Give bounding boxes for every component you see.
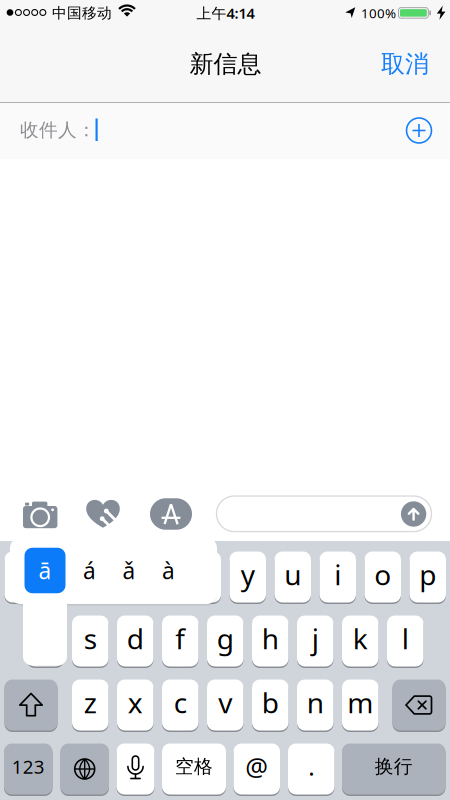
staticText: w xyxy=(57,556,79,593)
button[interactable]: t xyxy=(184,551,221,602)
staticText: 取消 xyxy=(381,49,429,79)
staticText: s xyxy=(84,620,97,657)
button[interactable]: i xyxy=(319,551,356,602)
button[interactable]: l xyxy=(387,615,423,666)
staticText: 上午4:14 xyxy=(196,3,254,23)
button[interactable]: x xyxy=(117,679,153,730)
button[interactable]: á xyxy=(83,555,96,585)
button[interactable]: 123 xyxy=(4,743,52,794)
button[interactable]: s xyxy=(72,615,108,666)
button[interactable]: 换行 xyxy=(342,743,445,794)
button[interactable]: k xyxy=(342,615,378,666)
button[interactable]: 数字触控 xyxy=(85,497,121,530)
staticText: c xyxy=(174,684,187,721)
staticText: 空格 xyxy=(175,755,213,778)
button[interactable]: 信息输入框 xyxy=(216,496,431,531)
staticText: g xyxy=(217,620,234,657)
staticText: n xyxy=(307,684,324,721)
button[interactable]: b xyxy=(252,679,288,730)
staticText: b xyxy=(262,684,279,721)
staticText: 新信息 xyxy=(189,49,261,79)
staticText: u xyxy=(284,556,301,593)
staticText: x xyxy=(128,684,143,721)
button[interactable]: j xyxy=(297,615,333,666)
staticText: r xyxy=(152,556,164,593)
staticText: v xyxy=(218,684,232,721)
button[interactable]: p xyxy=(409,551,446,602)
button[interactable]: n xyxy=(297,679,333,730)
staticText: 换行 xyxy=(375,755,413,778)
button[interactable]: 发送 xyxy=(401,501,426,527)
staticText: @ xyxy=(245,750,268,783)
button[interactable]: c xyxy=(162,679,198,730)
staticText: 123 xyxy=(12,754,45,779)
button[interactable]: . xyxy=(288,743,334,794)
staticText: h xyxy=(262,620,279,657)
button[interactable]: 应用商店 xyxy=(148,497,194,531)
staticText: 100% xyxy=(361,4,396,22)
button[interactable]: 相机 xyxy=(20,501,60,531)
staticText: j xyxy=(312,620,319,657)
button[interactable]: ǎ xyxy=(122,555,135,585)
staticText: z xyxy=(84,684,97,721)
staticText: l xyxy=(402,620,409,657)
button[interactable]: m xyxy=(342,679,378,730)
staticText: i xyxy=(334,556,341,593)
button[interactable]: 取消 xyxy=(370,44,440,84)
button[interactable]: g xyxy=(207,615,243,666)
button[interactable]: à xyxy=(162,555,175,585)
button[interactable]: f xyxy=(162,615,198,666)
staticText: à xyxy=(162,555,175,585)
button[interactable]: 下一个键盘 xyxy=(60,743,109,794)
button[interactable]: h xyxy=(252,615,288,666)
button[interactable]: 添加联系人 xyxy=(405,116,433,144)
staticText: ā xyxy=(38,555,51,585)
staticText: f xyxy=(175,620,185,657)
button[interactable]: @ xyxy=(233,743,280,794)
staticText: k xyxy=(353,620,368,657)
staticText: 中国移动 xyxy=(52,4,112,22)
button[interactable]: w xyxy=(49,551,86,602)
staticText: ǎ xyxy=(122,555,135,585)
staticText: 收件人： xyxy=(20,118,96,141)
button[interactable]: a xyxy=(27,615,63,666)
button[interactable]: Shift xyxy=(4,679,57,730)
staticText: m xyxy=(347,684,373,721)
button[interactable]: y xyxy=(229,551,266,602)
button[interactable]: e xyxy=(94,551,131,602)
staticText: o xyxy=(374,556,391,593)
staticText: p xyxy=(419,556,436,593)
button[interactable]: v xyxy=(207,679,243,730)
button[interactable]: d xyxy=(117,615,153,666)
button[interactable]: o xyxy=(364,551,401,602)
staticText: . xyxy=(308,751,314,782)
staticText: á xyxy=(83,555,96,585)
button[interactable]: 听写 xyxy=(116,743,154,794)
button[interactable]: r xyxy=(139,551,176,602)
button[interactable]: z xyxy=(72,679,108,730)
button[interactable]: 删除 xyxy=(392,679,445,730)
button[interactable]: u xyxy=(274,551,311,602)
staticText: y xyxy=(241,556,255,593)
button[interactable]: ā xyxy=(24,548,65,593)
staticText: d xyxy=(127,620,144,657)
staticText: q xyxy=(14,556,31,593)
button[interactable]: q xyxy=(4,551,41,602)
button[interactable]: 空格 xyxy=(162,743,226,794)
